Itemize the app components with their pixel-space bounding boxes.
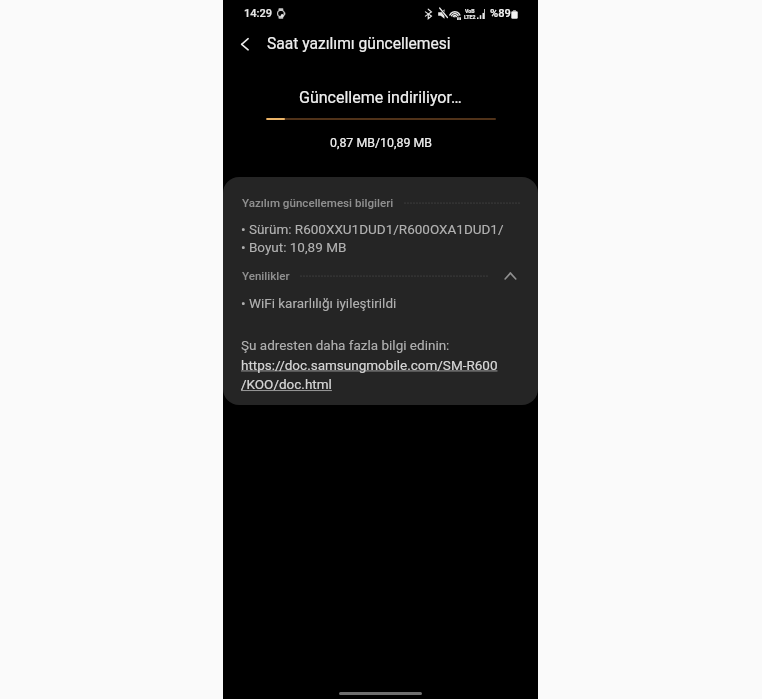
staticText: 0,87 MB/10,89 MB xyxy=(330,135,432,150)
staticText: 14:29 xyxy=(244,7,273,20)
staticText: %89 xyxy=(490,7,511,20)
staticText: • WiFi kararlılığı iyileştirildi xyxy=(241,295,397,311)
staticText: Saat yazılımı güncellemesi xyxy=(267,35,451,53)
staticText: • Sürüm: R600XXU1DUD1/R600OXA1DUD1/ xyxy=(241,221,504,237)
button[interactable]: https://doc.samsungmobile.com/SM-R600 /K… xyxy=(241,357,498,393)
staticText: Şu adresten daha fazla bilgi edinin: xyxy=(241,337,450,353)
staticText: https://doc.samsungmobile.com/SM-R600 /K… xyxy=(241,357,498,393)
other: Collapse xyxy=(502,268,518,284)
staticText: VoB xyxy=(465,8,475,14)
button[interactable]: Yenilikler xyxy=(242,268,518,284)
staticText: LTE2 xyxy=(464,14,476,19)
staticText: Yazılım güncellemesi bilgileri xyxy=(242,196,394,210)
button[interactable]: Back xyxy=(229,28,261,60)
staticText: Güncelleme indiriliyor… xyxy=(299,88,462,107)
staticText: Yenilikler xyxy=(242,269,290,283)
staticText: • Boyut: 10,89 MB xyxy=(241,239,347,255)
